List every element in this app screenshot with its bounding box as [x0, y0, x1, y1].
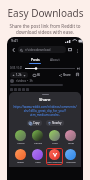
staticText: 86	[37, 73, 41, 77]
button[interactable]: About	[45, 55, 65, 63]
staticText: Nearby	[52, 121, 62, 125]
button[interactable]: Gmail	[63, 130, 78, 145]
button[interactable]: Photos	[12, 130, 29, 145]
staticText: Share	[63, 73, 71, 77]
staticText: 1.2k	[16, 73, 22, 77]
staticText: Gmail	[68, 142, 74, 145]
button[interactable]: Drive	[46, 130, 63, 145]
staticText: 9:41	[11, 38, 18, 43]
staticText: Reddit	[17, 161, 24, 164]
button[interactable]: Share	[59, 72, 71, 78]
button[interactable]: Posts	[25, 55, 45, 63]
button[interactable]: Video Download	[46, 149, 63, 164]
button[interactable]: Back	[10, 46, 18, 54]
staticText: About	[50, 57, 60, 62]
staticText: Posts	[31, 57, 40, 62]
button[interactable]: Nearby	[48, 120, 62, 126]
button[interactable]: Camera	[29, 130, 46, 145]
button[interactable]: Save	[75, 72, 80, 77]
staticText: r/videodownload	[25, 48, 51, 52]
staticText: Viber	[35, 161, 41, 164]
button[interactable]: Viber	[29, 149, 46, 164]
staticText: r/videos • 3h	[16, 79, 33, 83]
staticText: https://www.reddit.com/r/videos/comments…	[9, 105, 81, 117]
button[interactable]: 1.2k	[12, 72, 26, 78]
button[interactable]: 86	[33, 72, 41, 78]
staticText: Camera	[34, 142, 42, 145]
staticText: Share	[39, 97, 51, 103]
staticText: Easy Downloads	[7, 6, 84, 20]
staticText: Telegram	[66, 161, 76, 164]
other: Mute	[77, 67, 80, 70]
staticText: Share the post link from Reddit to downl…	[9, 23, 81, 35]
button[interactable]: r/videodownload	[18, 46, 66, 53]
staticText: 0:05 / 0:21	[10, 66, 23, 70]
staticText: Copy	[33, 121, 40, 125]
staticText: Photos	[17, 142, 25, 145]
staticText: Video Download	[46, 161, 63, 164]
button[interactable]: Reddit	[12, 149, 29, 164]
staticText: Drive	[52, 142, 58, 145]
button[interactable]: Telegram	[63, 149, 78, 164]
button[interactable]: Cast	[66, 46, 74, 54]
button[interactable]: Copy	[29, 120, 40, 126]
button[interactable]: More options	[74, 47, 80, 53]
